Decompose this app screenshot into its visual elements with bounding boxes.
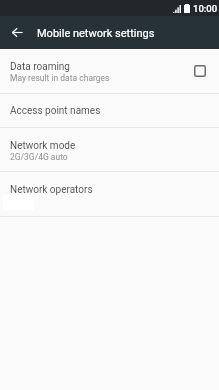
staticText: 2G/3G/4G auto [10, 152, 68, 162]
button[interactable]: Access point names [0, 94, 219, 127]
staticText: Mobile network settings [37, 27, 155, 40]
button[interactable]: Network mode [0, 128, 219, 171]
button[interactable]: Back [0, 16, 34, 49]
staticText: Data roaming [10, 61, 70, 73]
button[interactable]: Network operators [0, 172, 219, 216]
staticText: May result in data charges [10, 73, 110, 83]
staticText: 10:00 [193, 3, 218, 14]
staticText: Access point names [10, 105, 101, 117]
button[interactable]: Data roaming [0, 49, 219, 93]
button[interactable]: Toggle data roaming [194, 65, 206, 77]
staticText: Network operators [10, 184, 93, 196]
staticText: Network mode [10, 140, 76, 152]
